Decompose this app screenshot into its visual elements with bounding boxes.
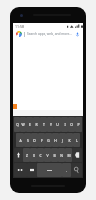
button[interactable]: Q: [14, 117, 20, 132]
staticText: A: [19, 138, 22, 143]
button[interactable]: Search: [71, 163, 82, 177]
button[interactable]: Space: [37, 163, 62, 177]
button[interactable]: .: [62, 163, 71, 177]
button[interactable]: K: [66, 133, 73, 147]
staticText: J: [62, 138, 63, 143]
staticText: V: [46, 153, 49, 158]
button[interactable]: S: [24, 133, 31, 147]
staticText: Search apps, web, and more...: [27, 32, 72, 36]
staticText: D: [33, 138, 36, 143]
button[interactable]: I: [61, 117, 68, 132]
button[interactable]: Y: [47, 117, 54, 132]
button[interactable]: C: [37, 148, 44, 162]
staticText: Z: [26, 153, 28, 158]
button[interactable]: Symbols: [27, 163, 37, 177]
staticText: L: [76, 138, 78, 143]
staticText: E: [29, 122, 31, 127]
button[interactable]: J: [59, 133, 66, 147]
button[interactable]: P: [75, 117, 82, 132]
button[interactable]: L: [73, 133, 80, 147]
staticText: R: [35, 122, 38, 127]
button[interactable]: A: [16, 133, 24, 147]
staticText: X: [33, 153, 35, 158]
staticText: U: [56, 122, 59, 127]
staticText: W: [21, 122, 25, 127]
staticText: T: [43, 122, 45, 127]
staticText: N: [60, 153, 63, 158]
staticText: .: [66, 168, 67, 173]
button[interactable]: X: [30, 148, 37, 162]
button[interactable]: G: [45, 133, 52, 147]
button[interactable]: Z: [23, 148, 30, 162]
button[interactable]: U: [54, 117, 61, 132]
button[interactable]: Emoji and language: [14, 163, 27, 177]
staticText: H: [54, 138, 57, 143]
staticText: S: [27, 138, 29, 143]
button[interactable]: B: [51, 148, 58, 162]
button[interactable]: R: [33, 117, 40, 132]
button[interactable]: W: [20, 117, 26, 132]
staticText: F: [41, 138, 43, 143]
staticText: P: [77, 122, 80, 127]
staticText: O: [70, 122, 73, 127]
staticText: C: [39, 153, 42, 158]
button[interactable]: M: [65, 148, 72, 162]
button[interactable]: Voice search: [74, 31, 80, 37]
button[interactable]: Shift: [14, 148, 23, 162]
button[interactable]: E: [26, 117, 33, 132]
staticText: Q: [16, 122, 19, 127]
staticText: B: [53, 153, 56, 158]
button[interactable]: Backspace: [72, 148, 82, 162]
button[interactable]: H: [52, 133, 59, 147]
button[interactable]: V: [44, 148, 51, 162]
button[interactable]: T: [40, 117, 47, 132]
button[interactable]: F: [38, 133, 45, 147]
staticText: 11:58: [15, 24, 24, 29]
button[interactable]: N: [58, 148, 65, 162]
staticText: Y: [50, 122, 52, 127]
button[interactable]: O: [68, 117, 75, 132]
button[interactable]: D: [31, 133, 38, 147]
staticText: G: [47, 138, 50, 143]
button[interactable]: Search apps, web, and more...: [13, 29, 83, 39]
staticText: I: [64, 122, 66, 127]
staticText: K: [68, 138, 71, 143]
staticText: M: [67, 153, 71, 158]
